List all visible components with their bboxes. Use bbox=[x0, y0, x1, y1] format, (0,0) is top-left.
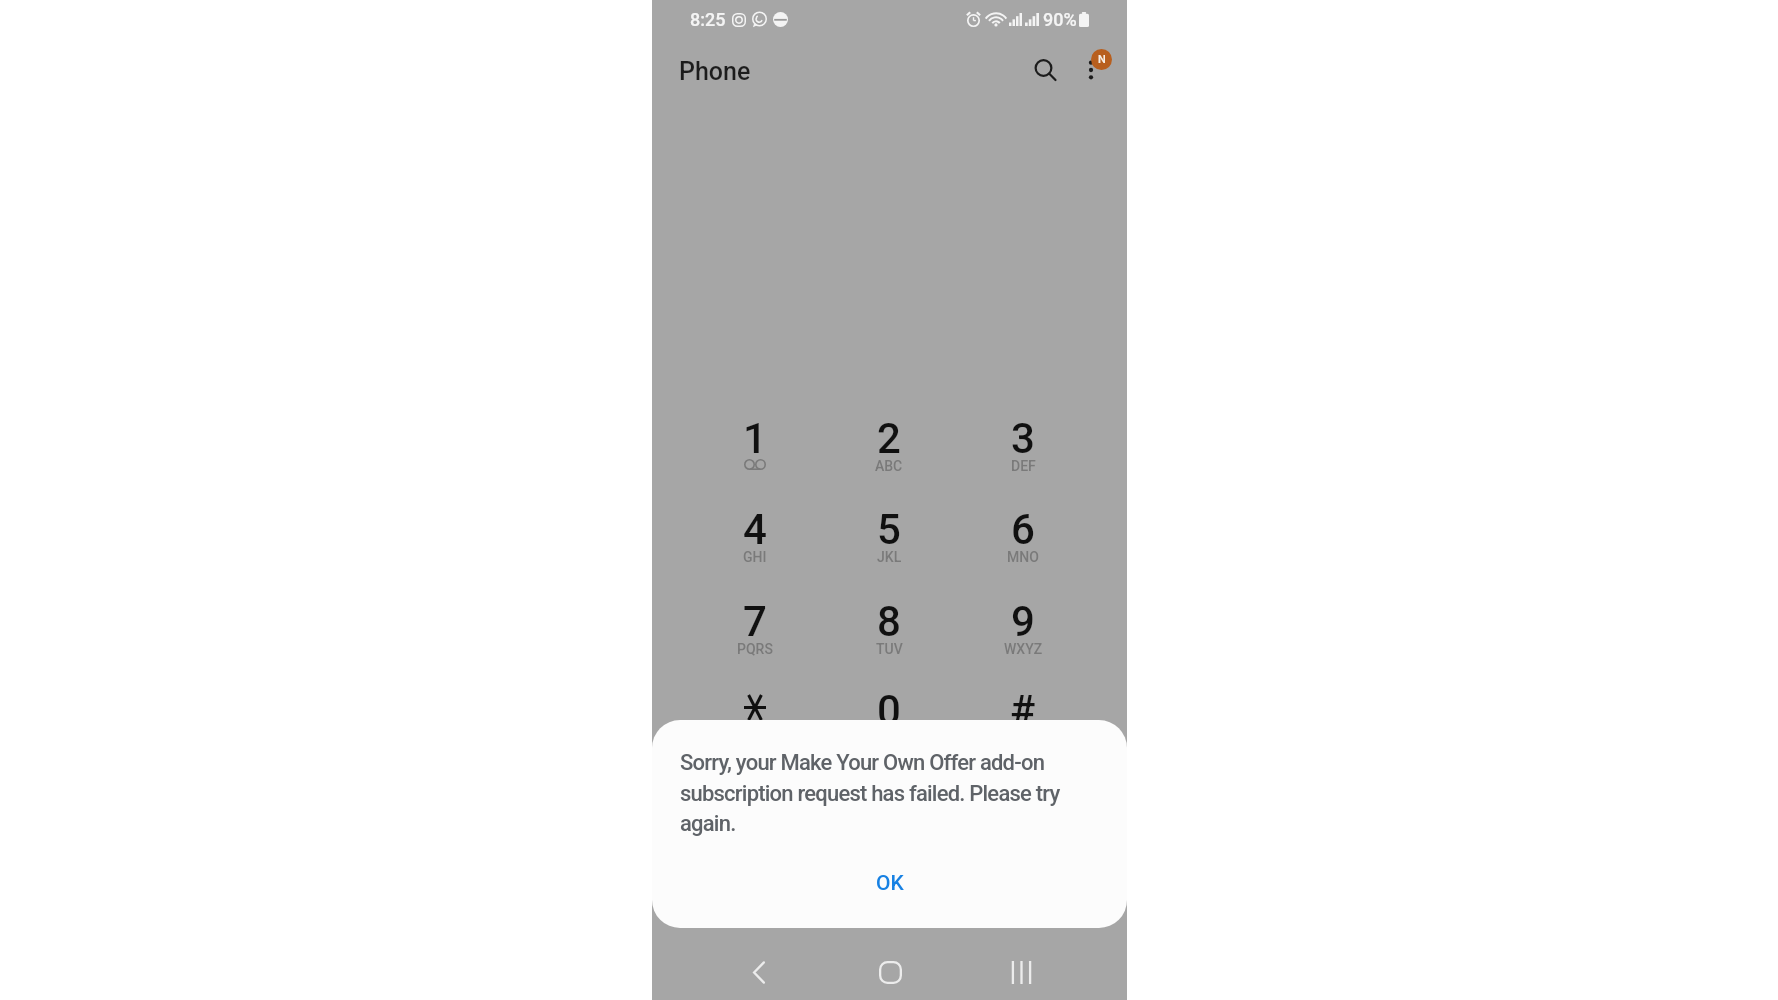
staticText: N bbox=[1098, 53, 1106, 66]
staticText: 1 bbox=[743, 414, 767, 463]
button[interactable]: 0 bbox=[841, 673, 937, 761]
staticText: 8 bbox=[877, 597, 901, 646]
staticText: 2 bbox=[877, 414, 901, 463]
staticText: ABC bbox=[875, 458, 903, 474]
staticText: Phone bbox=[679, 57, 751, 86]
button[interactable]: Pound bbox=[975, 673, 1071, 761]
staticText: 9 bbox=[1011, 597, 1035, 646]
staticText: 7 bbox=[743, 597, 767, 646]
button[interactable]: 2 bbox=[841, 401, 937, 489]
button[interactable]: 5 bbox=[841, 492, 937, 580]
staticText: 5 bbox=[877, 505, 901, 554]
button[interactable]: Back bbox=[716, 940, 802, 1000]
staticText: PQRS bbox=[737, 641, 773, 657]
staticText: Sorry, your Make Your Own Offer add-on s… bbox=[680, 750, 1080, 836]
button[interactable]: 4 bbox=[707, 492, 803, 580]
staticText: 8:25 bbox=[690, 9, 726, 30]
staticText: # bbox=[1010, 686, 1036, 735]
staticText: OK bbox=[876, 871, 904, 896]
button[interactable]: OK bbox=[652, 860, 1127, 906]
button[interactable]: 6 bbox=[975, 492, 1071, 580]
button[interactable]: 8 bbox=[841, 584, 937, 672]
staticText: 6 bbox=[1011, 505, 1035, 554]
staticText: JKL bbox=[877, 549, 902, 565]
staticText: 4 bbox=[743, 505, 767, 554]
button[interactable]: Star bbox=[707, 673, 803, 761]
button[interactable]: 1 bbox=[707, 401, 803, 489]
button[interactable]: 7 bbox=[707, 584, 803, 672]
staticText: 3 bbox=[1011, 414, 1035, 463]
button[interactable]: 3 bbox=[975, 401, 1071, 489]
staticText: WXYZ bbox=[1004, 641, 1043, 657]
staticText: 90% bbox=[1043, 9, 1077, 30]
staticText: MNO bbox=[1007, 549, 1039, 565]
staticText: TUV bbox=[876, 641, 903, 657]
staticText: GHI bbox=[743, 549, 767, 565]
button[interactable]: More options bbox=[1069, 46, 1113, 90]
button[interactable]: Search bbox=[1025, 46, 1069, 90]
button[interactable]: 9 bbox=[975, 584, 1071, 672]
button[interactable]: Recent apps bbox=[978, 940, 1064, 1000]
staticText: 0 bbox=[877, 686, 901, 735]
button[interactable]: Home bbox=[847, 940, 933, 1000]
staticText: DEF bbox=[1011, 458, 1036, 474]
